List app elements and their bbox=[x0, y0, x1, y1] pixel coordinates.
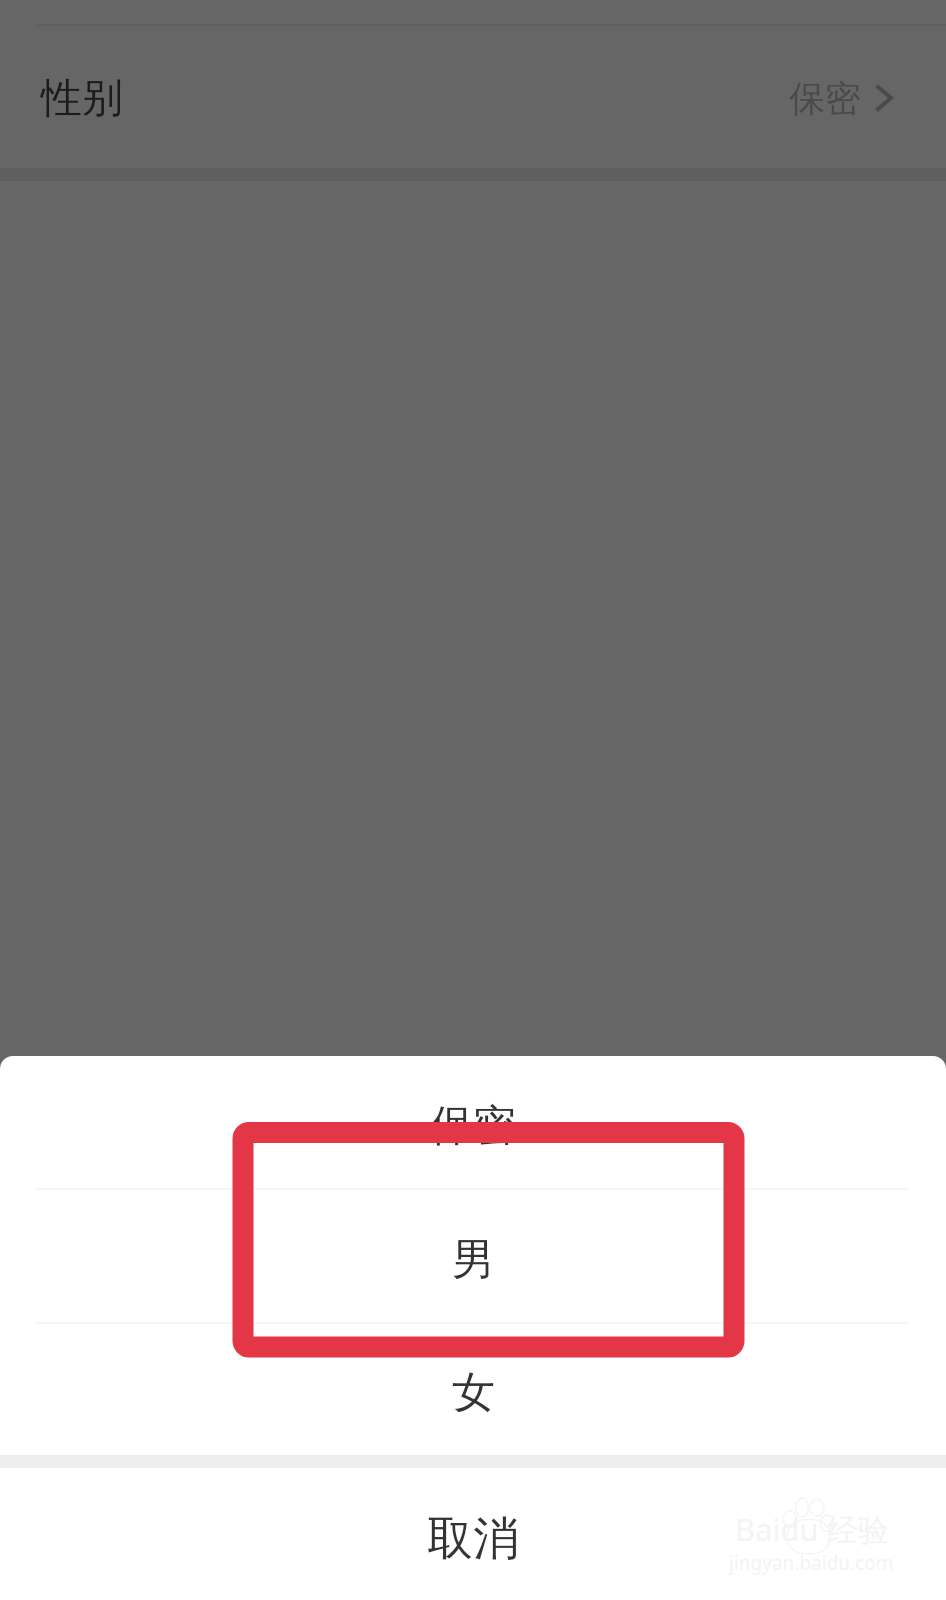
staticText: 取消 bbox=[427, 1510, 519, 1568]
button[interactable]: 女 bbox=[0, 1324, 946, 1455]
other: 打开 bbox=[878, 87, 891, 109]
staticText: 女 bbox=[452, 1366, 495, 1420]
button[interactable]: 取消 bbox=[0, 1468, 946, 1600]
staticText: Baidu 经验 bbox=[735, 1508, 889, 1550]
staticText: 性别 bbox=[41, 73, 123, 125]
staticText: 保密 bbox=[430, 1099, 516, 1153]
staticText: 保密 bbox=[789, 76, 861, 121]
button[interactable]: 男 bbox=[0, 1190, 946, 1322]
button[interactable]: 性别 bbox=[0, 26, 946, 168]
staticText: jingyan.baidu.com bbox=[729, 1550, 894, 1576]
button[interactable]: 保密 bbox=[0, 1056, 946, 1188]
staticText: 男 bbox=[452, 1233, 495, 1287]
